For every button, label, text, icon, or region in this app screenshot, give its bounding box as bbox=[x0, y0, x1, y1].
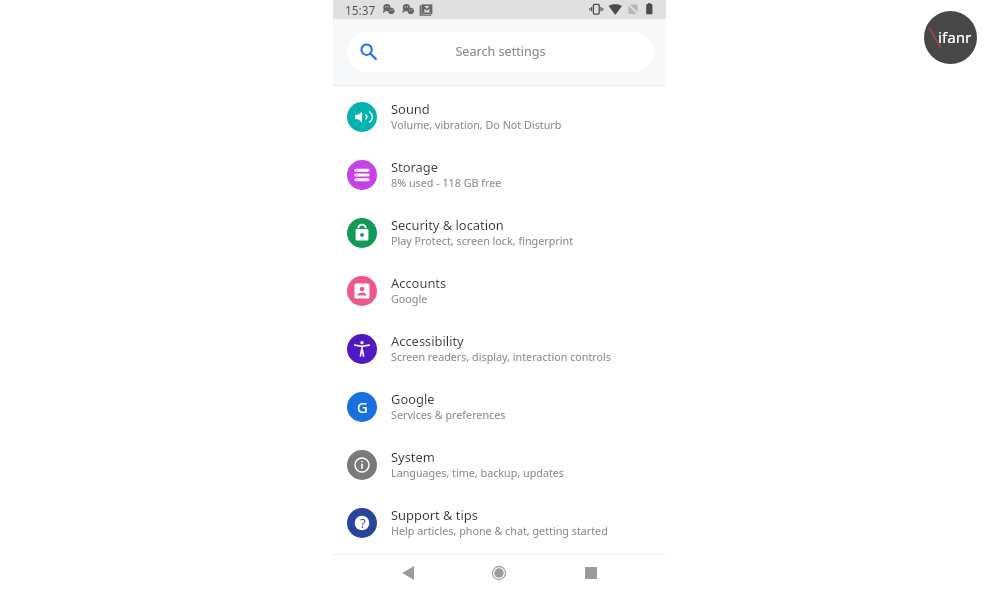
button[interactable]: Security & location bbox=[333, 204, 666, 262]
staticText: Storage bbox=[391, 158, 439, 176]
button[interactable]: Storage bbox=[333, 146, 666, 204]
staticText: Google bbox=[391, 292, 428, 307]
button[interactable]: Home bbox=[477, 554, 521, 591]
staticText: Help articles, phone & chat, getting sta… bbox=[391, 524, 608, 539]
staticText: Search settings bbox=[367, 43, 634, 60]
staticText: ifanr bbox=[938, 27, 972, 48]
staticText: 15:37 bbox=[345, 2, 376, 18]
button[interactable]: Recents bbox=[569, 554, 613, 591]
staticText: System bbox=[391, 448, 435, 466]
staticText: Volume, vibration, Do Not Disturb bbox=[391, 118, 562, 133]
button[interactable]: Accessibility bbox=[333, 320, 666, 378]
staticText: Accounts bbox=[391, 274, 447, 292]
staticText: Google bbox=[391, 390, 435, 408]
staticText: Languages, time, backup, updates bbox=[391, 466, 565, 481]
button[interactable]: Search settings bbox=[347, 32, 654, 72]
staticText: Services & preferences bbox=[391, 408, 506, 423]
button[interactable]: Accounts bbox=[333, 262, 666, 320]
button[interactable]: Back bbox=[386, 554, 430, 591]
staticText: Security & location bbox=[391, 216, 504, 234]
staticText: Accessibility bbox=[391, 332, 464, 350]
staticText: ? bbox=[360, 514, 366, 532]
staticText: Screen readers, display, interaction con… bbox=[391, 350, 611, 365]
button[interactable]: Sound bbox=[333, 88, 666, 146]
button[interactable]: ? bbox=[333, 494, 666, 552]
staticText: Support & tips bbox=[391, 506, 478, 524]
button[interactable]: System bbox=[333, 436, 666, 494]
staticText: Play Protect, screen lock, fingerprint bbox=[391, 234, 574, 249]
button[interactable]: G bbox=[333, 378, 666, 436]
staticText: G bbox=[357, 397, 368, 417]
staticText: 8% used - 118 GB free bbox=[391, 176, 502, 191]
staticText: Sound bbox=[391, 100, 430, 118]
